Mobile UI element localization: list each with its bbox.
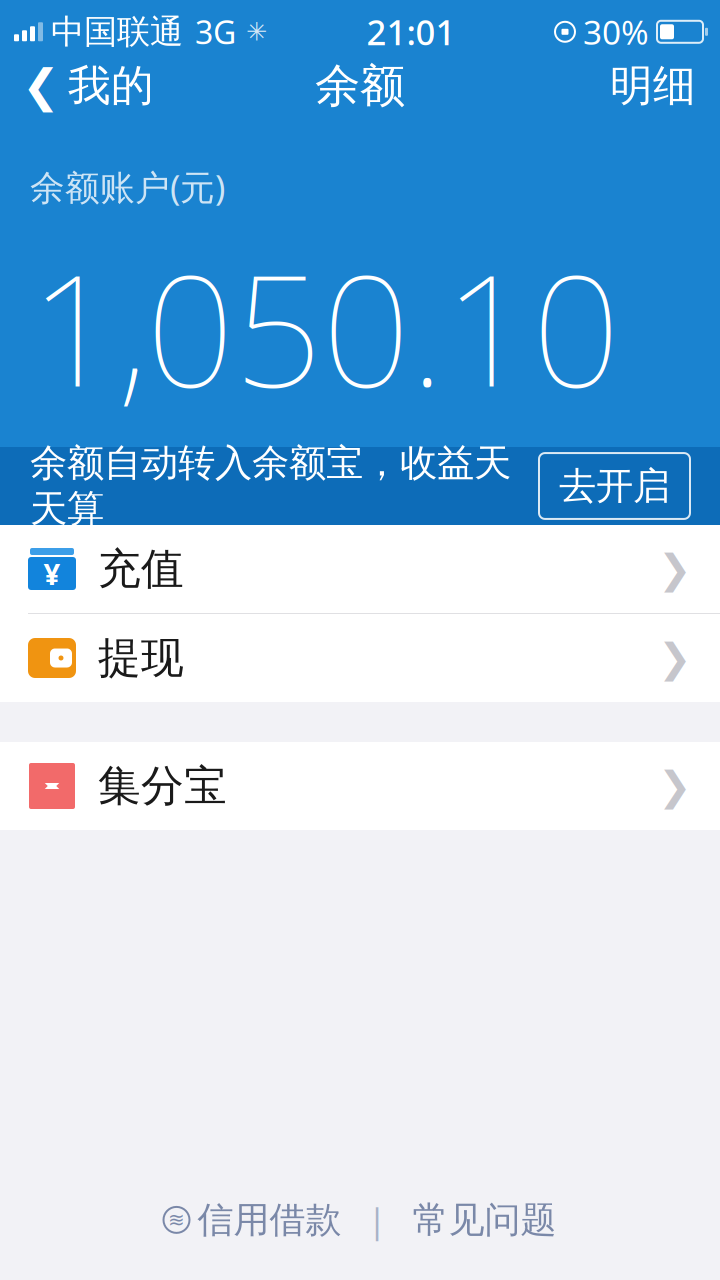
staticText: |: [367, 1197, 386, 1243]
staticText: 余额: [315, 58, 405, 114]
button[interactable]: ❮: [0, 54, 176, 118]
staticText: ¥: [43, 554, 60, 593]
staticText: 30%: [583, 10, 649, 54]
staticText: ❯: [658, 635, 692, 681]
staticText: 提现: [98, 632, 184, 684]
staticText: 信用借款: [197, 1198, 341, 1242]
staticText: 3G: [195, 10, 236, 53]
staticText: 余额自动转入余额宝，收益天天算: [30, 440, 511, 532]
staticText: 我的: [68, 60, 154, 112]
staticText: 明细: [610, 60, 696, 112]
staticText: 余额账户(元): [30, 164, 225, 210]
button[interactable]: 常见问题: [404, 1188, 564, 1252]
button[interactable]: 明细: [586, 54, 720, 118]
staticText: 集分宝: [98, 760, 227, 812]
staticText: ≋: [168, 1208, 185, 1231]
staticText: 常见问题: [412, 1198, 556, 1242]
button[interactable]: ¥: [0, 525, 720, 613]
button[interactable]: 去开启: [539, 453, 690, 519]
staticText: 去开启: [559, 463, 670, 509]
staticText: 中国联通: [51, 11, 183, 52]
staticText: 1,050.10: [30, 224, 620, 429]
staticText: 充值: [98, 543, 184, 595]
button[interactable]: ≋: [155, 1188, 349, 1252]
staticText: ❮: [22, 60, 60, 112]
staticText: ❯: [658, 763, 692, 809]
staticText: ✳: [246, 17, 267, 46]
staticText: 21:01: [366, 9, 455, 55]
button[interactable]: 提现: [0, 614, 720, 702]
button[interactable]: 集分宝: [0, 742, 720, 830]
staticText: ❯: [658, 546, 692, 592]
